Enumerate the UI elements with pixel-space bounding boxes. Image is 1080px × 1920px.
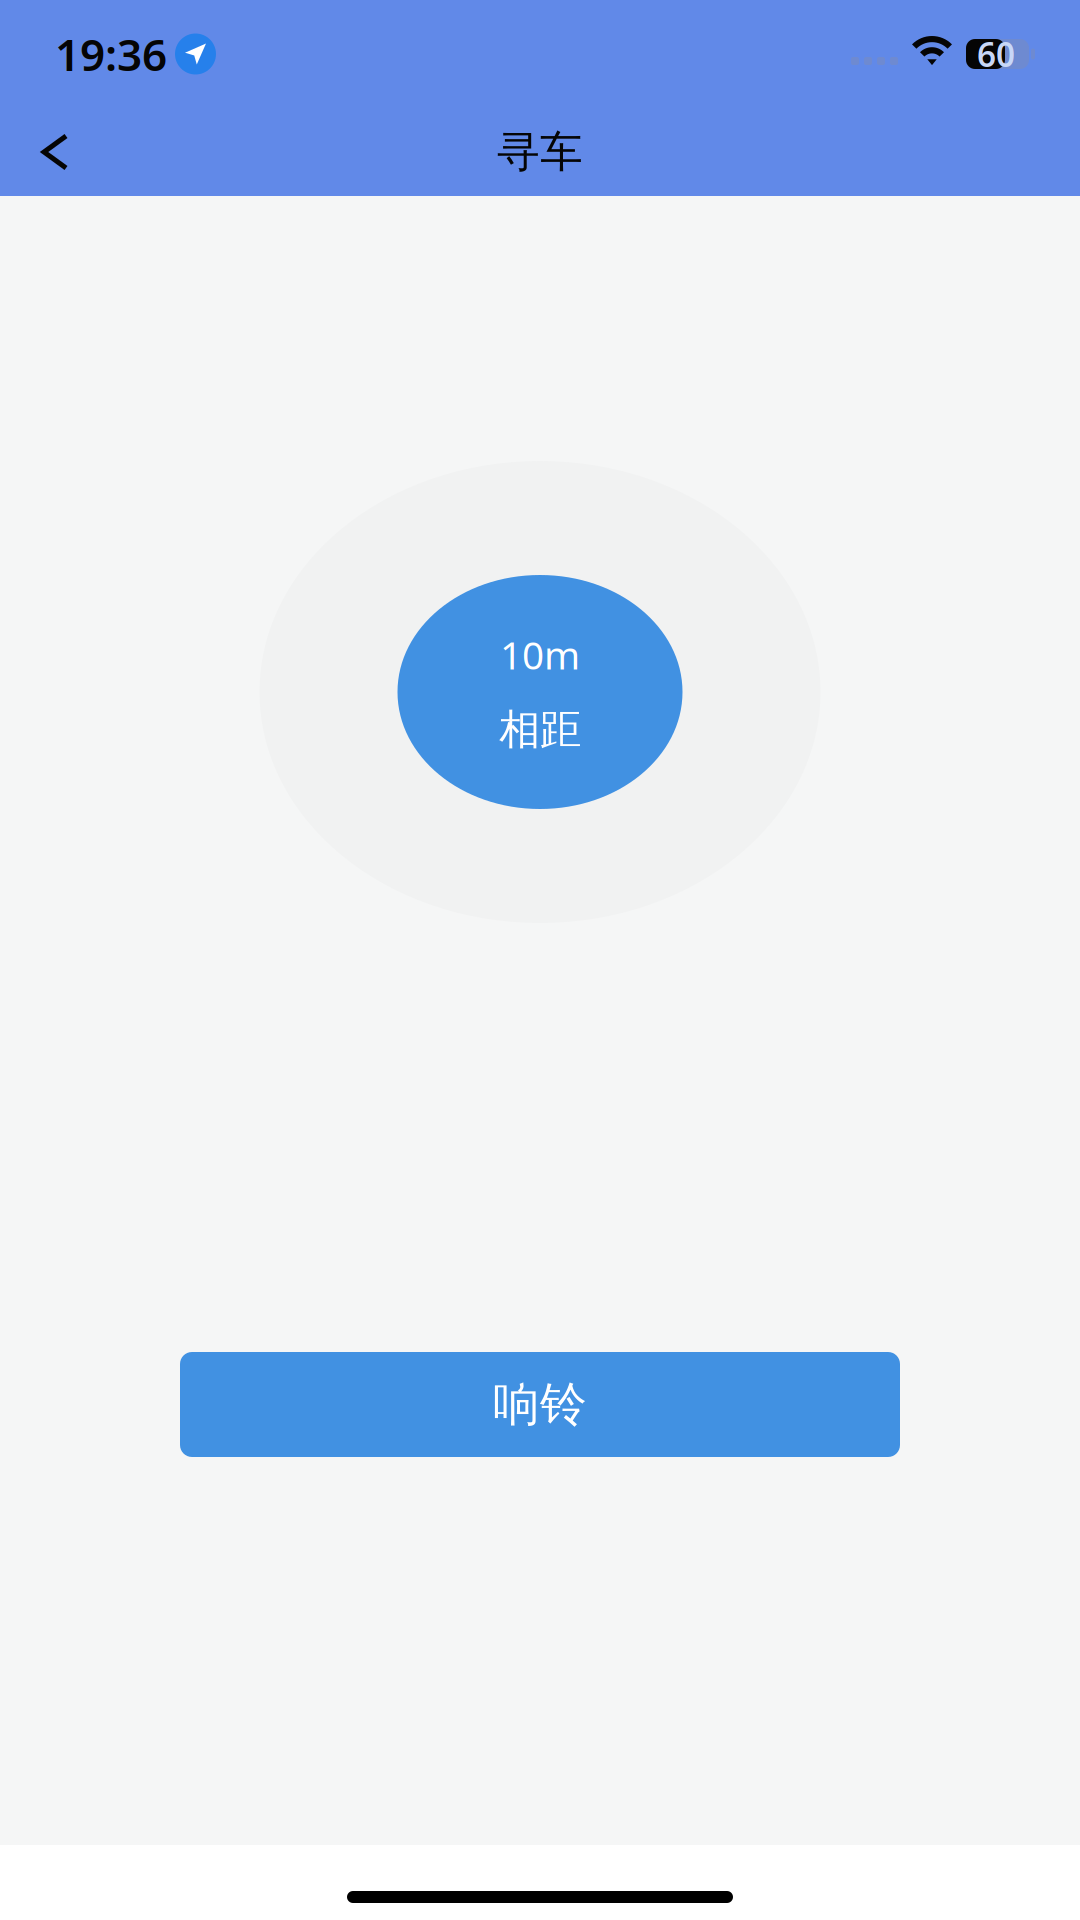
button[interactable]: Back bbox=[0, 110, 96, 194]
staticText: 寻车 bbox=[497, 126, 583, 178]
staticText: 相距 bbox=[499, 704, 581, 755]
staticText: 10m bbox=[500, 629, 580, 680]
staticText: 60 bbox=[977, 32, 1015, 76]
staticText: 响铃 bbox=[493, 1376, 587, 1433]
staticText: 19:36 bbox=[55, 25, 167, 83]
button[interactable]: 响铃 bbox=[180, 1352, 900, 1457]
